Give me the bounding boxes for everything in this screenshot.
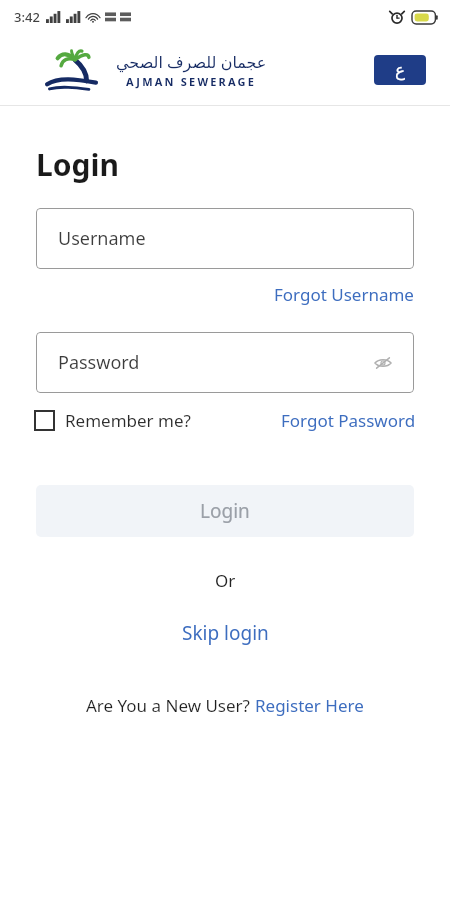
button[interactable]: Password [36, 332, 414, 393]
button[interactable]: Switch language to Arabic [374, 55, 426, 85]
staticText: Login [36, 144, 119, 185]
button[interactable]: Forgot Username [272, 281, 416, 308]
staticText: Skip login [182, 620, 269, 646]
staticText: Forgot Password [281, 409, 416, 432]
button[interactable]: Remember me? [34, 406, 191, 435]
staticText: عجمان للصرف الصحي [116, 51, 267, 73]
staticText: Forgot Username [274, 283, 414, 306]
button[interactable]: Skip login [176, 617, 275, 649]
staticText: 3:42 [14, 8, 40, 26]
button[interactable]: Forgot Password [281, 406, 416, 435]
staticText: Or [215, 569, 236, 592]
staticText: Password [58, 350, 140, 375]
staticText: Register Here [255, 694, 364, 717]
staticText: Remember me? [65, 409, 191, 432]
staticText: ع [395, 60, 406, 80]
staticText: Username [58, 226, 146, 251]
staticText: AJMAN SEWERAGE [126, 74, 257, 89]
button[interactable]: Register Here [255, 694, 364, 717]
button[interactable]: Username [36, 208, 414, 269]
staticText: Are You a New User? [86, 694, 255, 717]
staticText: Login [200, 498, 250, 524]
button[interactable]: Login [36, 485, 414, 537]
button[interactable]: Show password [370, 350, 396, 376]
